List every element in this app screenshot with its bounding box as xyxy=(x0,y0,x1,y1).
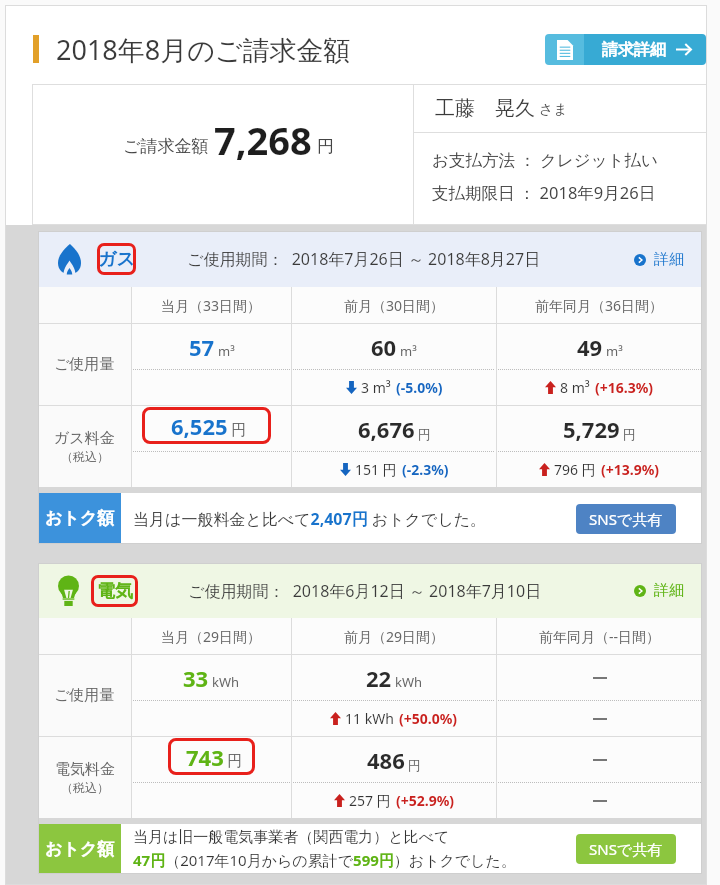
staticText: 796 円 xyxy=(554,460,596,479)
staticText: 当月（33日間） xyxy=(161,296,262,315)
staticText: おトク額 xyxy=(45,508,115,529)
staticText: 7,268 xyxy=(214,114,312,166)
staticText: (-2.3%) xyxy=(402,460,449,479)
staticText: おトク額 xyxy=(45,839,115,860)
staticText: 詳細 xyxy=(654,250,684,269)
staticText: ご使用期間： 2018年7月26日 ～ 2018年8月27日 xyxy=(187,248,541,270)
staticText: 円 xyxy=(317,136,334,157)
staticText: 57 xyxy=(189,332,215,362)
staticText: 支払期限日 ： 2018年9月26日 xyxy=(432,181,656,204)
staticText: ご使用量 xyxy=(54,355,115,374)
staticText: 工藤 晃久 xyxy=(435,94,535,121)
staticText: 前月（30日間） xyxy=(344,296,445,315)
staticText: お支払方法 ： クレジット払い xyxy=(432,148,658,171)
staticText: 2018年8月のご請求金額 xyxy=(56,31,351,68)
staticText: ご請求金額 xyxy=(123,136,209,157)
staticText: 電気 xyxy=(97,580,133,603)
staticText: ガス料金 xyxy=(54,429,115,448)
staticText: （税込） xyxy=(61,449,109,464)
button[interactable]: SNSで共有 xyxy=(576,504,676,534)
staticText: 8 m³ xyxy=(560,378,590,397)
staticText: ご使用量 xyxy=(54,686,115,705)
staticText: 257 円 xyxy=(349,791,391,810)
staticText: 6,525 xyxy=(171,411,228,441)
staticText: 47円（2017年10月からの累計で599円）おトクでした。 xyxy=(133,850,516,870)
staticText: 円 xyxy=(231,421,246,440)
staticText: 151 円 xyxy=(355,460,397,479)
staticText: 33 xyxy=(183,663,209,693)
staticText: (+16.3%) xyxy=(595,378,654,397)
staticText: 3 m³ xyxy=(361,378,391,397)
staticText: 前年同月（36日間） xyxy=(535,296,664,315)
staticText: 当月は旧一般電気事業者（関西電力）と比べて xyxy=(133,828,450,847)
staticText: SNSで共有 xyxy=(589,509,663,529)
staticText: 円 xyxy=(408,757,421,773)
staticText: 743 xyxy=(186,742,224,772)
staticText: SNSで共有 xyxy=(589,839,663,859)
staticText: 前月（29日間） xyxy=(344,627,445,646)
staticText: (-5.0%) xyxy=(396,378,443,397)
staticText: さま xyxy=(539,101,568,119)
staticText: 電気料金 xyxy=(55,760,115,779)
staticText: 22 xyxy=(366,663,392,693)
staticText: 60 xyxy=(371,332,397,362)
staticText: (+52.9%) xyxy=(396,791,455,810)
staticText: m³ xyxy=(606,342,623,360)
staticText: kWh xyxy=(212,673,240,691)
staticText: m³ xyxy=(218,342,235,360)
staticText: (+50.0%) xyxy=(399,709,458,728)
staticText: 当月（29日間） xyxy=(161,627,262,646)
button[interactable]: 請求詳細 xyxy=(545,34,706,65)
staticText: m³ xyxy=(400,342,417,360)
staticText: 486 xyxy=(367,745,405,775)
staticText: 円 xyxy=(227,752,242,771)
button[interactable]: 詳細 xyxy=(634,581,702,600)
staticText: 円 xyxy=(418,426,431,442)
staticText: 前年同月（--日間） xyxy=(539,627,661,646)
staticText: 当月は一般料金と比べて2,407円 おトクでした。 xyxy=(133,508,487,530)
button[interactable]: 詳細 xyxy=(634,250,702,269)
button[interactable]: SNSで共有 xyxy=(576,834,676,864)
staticText: 5,729 xyxy=(563,414,620,444)
staticText: 6,676 xyxy=(358,414,415,444)
staticText: kWh xyxy=(395,673,423,691)
staticText: 円 xyxy=(623,426,636,442)
staticText: 請求詳細 xyxy=(602,40,666,60)
staticText: 49 xyxy=(577,332,603,362)
staticText: ご使用期間： 2018年6月12日 ～ 2018年7月10日 xyxy=(188,580,542,602)
staticText: ガス xyxy=(98,248,135,271)
staticText: 詳細 xyxy=(654,581,684,600)
staticText: (+13.9%) xyxy=(601,460,660,479)
staticText: （税込） xyxy=(61,780,109,795)
staticText: 11 kWh xyxy=(345,709,394,728)
